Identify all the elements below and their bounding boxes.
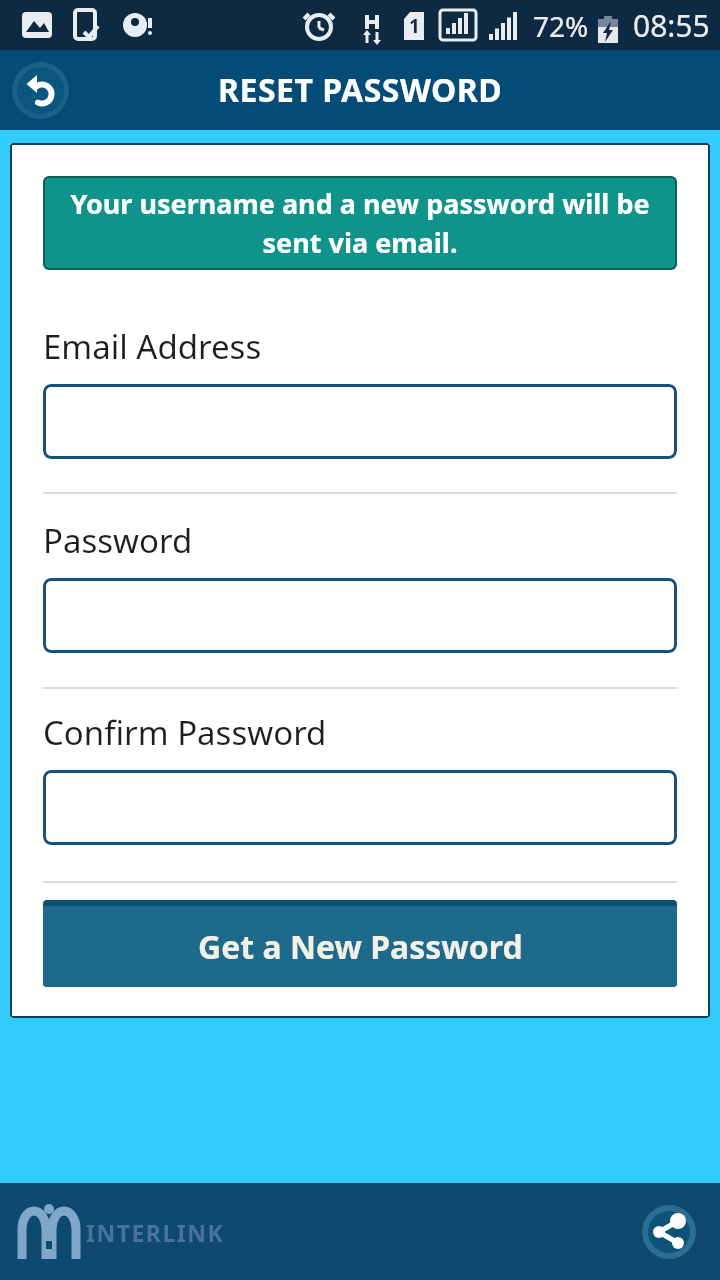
staticText: Confirm Password <box>43 710 327 755</box>
staticText: RESET PASSWORD <box>218 68 503 112</box>
button[interactable] <box>43 384 677 459</box>
staticText: Your username and a new password will be… <box>70 185 650 261</box>
staticText: Get a New Password <box>198 925 523 969</box>
button[interactable] <box>12 62 69 119</box>
button[interactable] <box>43 578 677 653</box>
staticText: Password <box>43 518 193 563</box>
staticText: 08:55 <box>633 5 710 46</box>
staticText: 1 <box>409 13 420 39</box>
button[interactable] <box>642 1205 696 1259</box>
staticText: Email Address <box>43 324 262 369</box>
staticText: 72% <box>533 7 589 45</box>
button[interactable]: Get a New Password <box>43 906 677 987</box>
staticText: INTERLINK <box>86 1217 225 1248</box>
button[interactable] <box>43 770 677 845</box>
